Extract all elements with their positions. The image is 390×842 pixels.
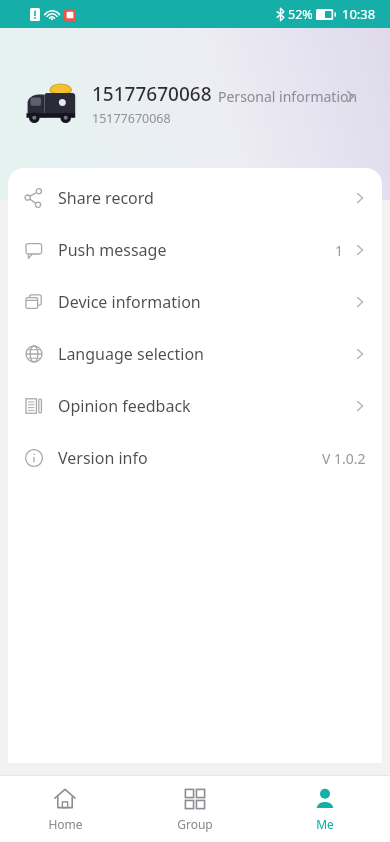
staticText: Personal information: [218, 87, 358, 106]
button[interactable]: Group: [130, 776, 260, 842]
button[interactable]: Language selection: [8, 328, 382, 380]
button[interactable]: 15177670068: [0, 28, 390, 168]
staticText: 15177670068: [92, 81, 212, 107]
staticText: Group: [177, 816, 213, 832]
button[interactable]: Version info: [8, 432, 382, 484]
button[interactable]: Device information: [8, 276, 382, 328]
staticText: 1: [335, 241, 344, 260]
staticText: Opinion feedback: [58, 395, 191, 417]
button[interactable]: Me: [260, 776, 390, 842]
button[interactable]: Push message: [8, 224, 382, 276]
staticText: Version info: [58, 447, 148, 469]
staticText: Home: [48, 816, 83, 832]
staticText: 10:38: [342, 5, 376, 23]
staticText: Device information: [58, 291, 201, 313]
staticText: V 1.0.2: [322, 449, 366, 468]
staticText: Push message: [58, 239, 167, 261]
button[interactable]: Share record: [8, 172, 382, 224]
staticText: 52%: [288, 6, 313, 23]
staticText: Language selection: [58, 343, 204, 365]
button[interactable]: Home: [0, 776, 130, 842]
staticText: Me: [316, 816, 334, 832]
staticText: 15177670068: [92, 110, 171, 127]
button[interactable]: Opinion feedback: [8, 380, 382, 432]
staticText: Share record: [58, 187, 154, 209]
